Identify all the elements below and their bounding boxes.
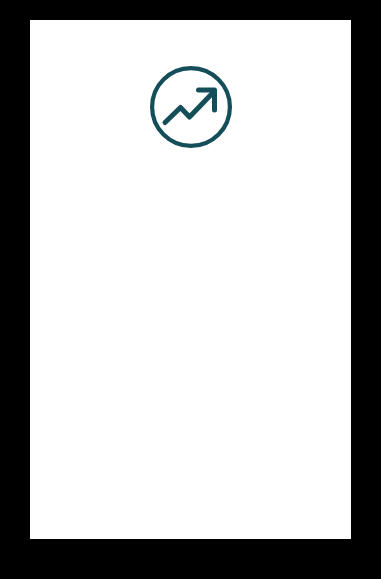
button[interactable]: Trending up logo bbox=[150, 66, 232, 148]
